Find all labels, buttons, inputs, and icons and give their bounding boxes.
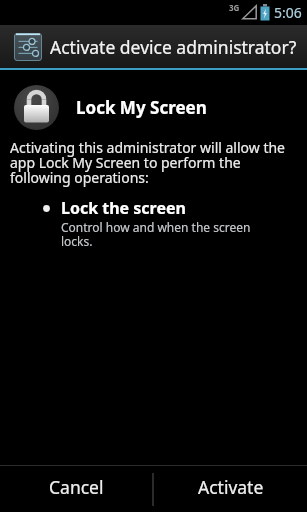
staticText: Lock My Screen <box>76 96 207 119</box>
staticText: Control how and when the screen locks. <box>61 219 251 249</box>
button[interactable]: Activate <box>154 466 307 512</box>
staticText: 3G <box>229 2 240 13</box>
staticText: 5:06 <box>274 3 302 22</box>
staticText: Lock the screen <box>61 197 186 219</box>
staticText: Activate device administrator? <box>50 35 297 59</box>
staticText: Activate <box>198 475 264 499</box>
staticText: Cancel <box>49 475 104 499</box>
button[interactable]: Cancel <box>0 466 152 512</box>
staticText: Activating this administrator will allow… <box>10 138 286 187</box>
